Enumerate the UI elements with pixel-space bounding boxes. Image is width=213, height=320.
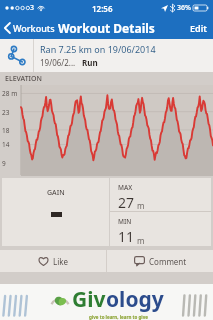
staticText: 36% [177,3,191,13]
staticText: ology [106,285,164,314]
button[interactable]: MIN [110,212,211,246]
staticText: MIN [118,217,132,226]
staticText: Workout Details [58,20,155,36]
button[interactable]: GAIN [2,178,109,246]
staticText: m [137,200,145,211]
staticText: m [137,235,145,246]
staticText: 18 [2,126,10,135]
staticText: 27 [118,193,135,211]
staticText: 28 m [2,89,18,98]
button[interactable]: Like [0,250,106,272]
button[interactable]: MAX [110,178,211,211]
staticText: Run [82,57,98,68]
staticText: Ran 7.25 km on 19/06/2014 [40,43,156,55]
staticText: ELEVATION [5,74,42,84]
button[interactable]: Comment [107,250,213,272]
staticText: 23 [2,108,10,117]
staticText: 3 [30,3,35,13]
button[interactable]: Ran 7.25 km on 19/06/2014 [0,39,213,72]
staticText: Like [53,256,69,267]
staticText: Workouts [13,22,55,34]
staticText: 12:56 [92,3,113,14]
button[interactable]: Workouts [0,20,59,36]
staticText: 19/06/2... [40,57,76,68]
staticText: MAX [118,183,133,192]
staticText: 11 [118,227,135,246]
staticText: 9 [2,159,6,168]
staticText: Giv [72,285,106,314]
staticText: give to learn, learn to give [89,314,148,320]
staticText: GAIN [47,188,65,198]
button[interactable]: Edit [184,18,213,38]
staticText: 14 [2,140,10,149]
staticText: Comment [149,256,187,267]
button[interactable]: Givology advertisement [0,284,213,320]
